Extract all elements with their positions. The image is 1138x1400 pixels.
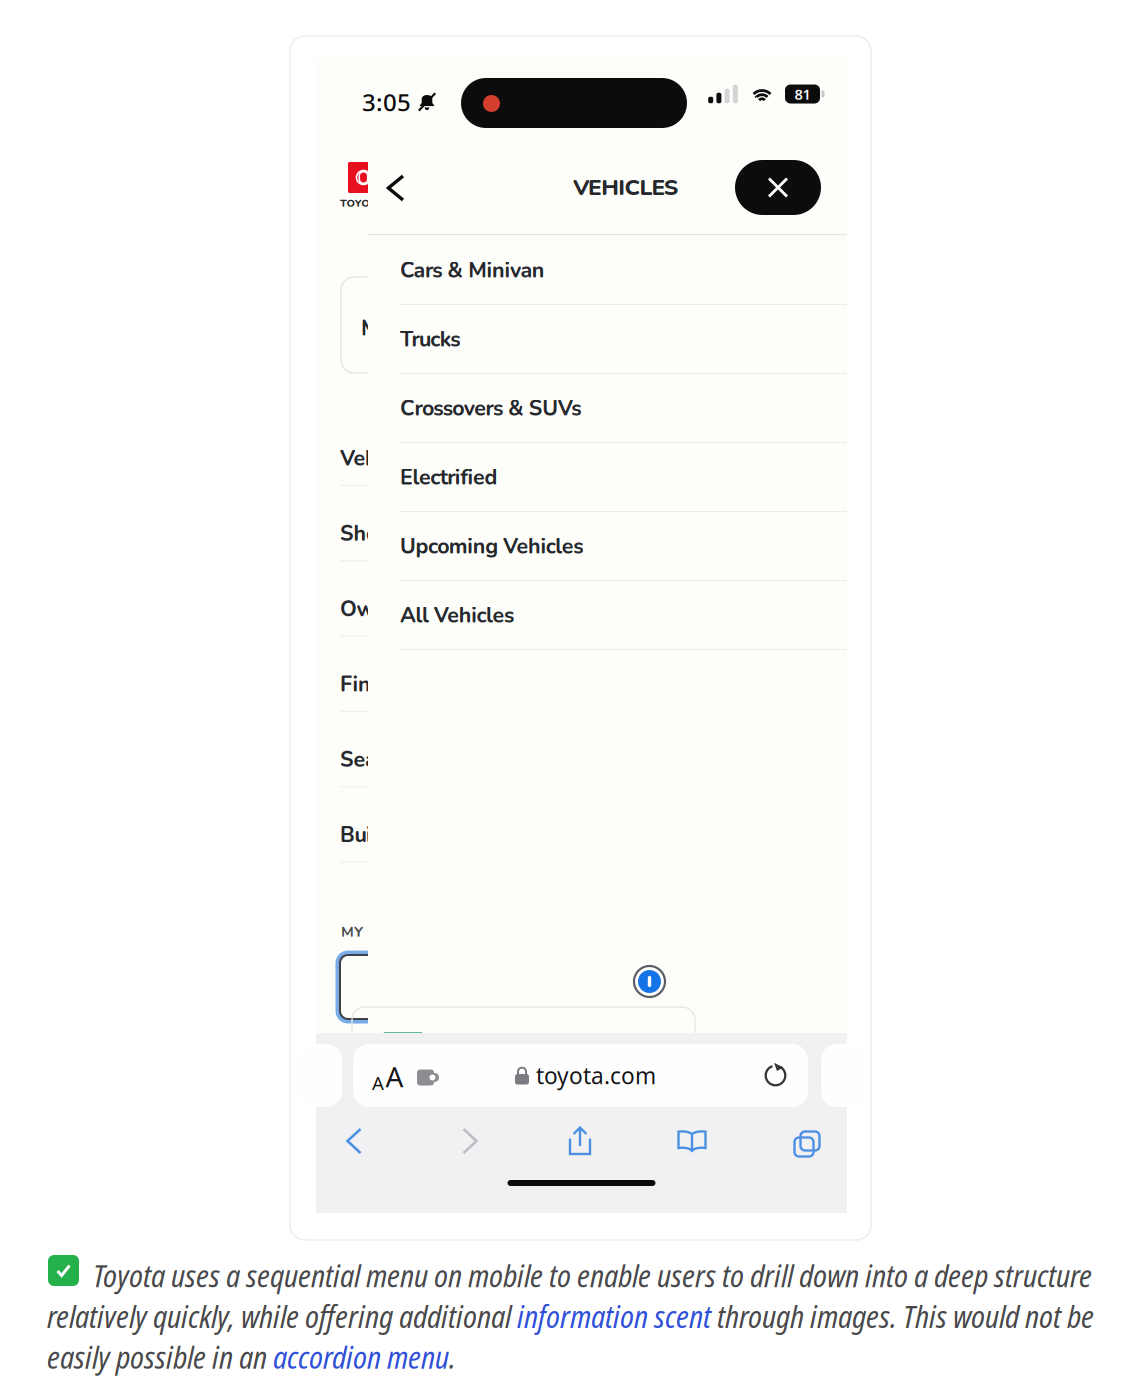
staticText: Vehicles bbox=[340, 444, 420, 473]
button[interactable]: Upcoming Vehicles bbox=[368, 512, 847, 581]
button[interactable]: A bbox=[353, 1044, 808, 1107]
staticText: toyota.com bbox=[536, 1060, 656, 1090]
button[interactable]: Close bbox=[735, 160, 821, 215]
staticText: Toyota uses a sequential menu on mobile … bbox=[47, 1255, 1094, 1377]
staticText: Crossovers & SUVs bbox=[400, 394, 581, 423]
staticText: All Vehicles bbox=[400, 601, 514, 630]
button[interactable]: All Vehicles bbox=[368, 581, 847, 650]
staticText: Electrified bbox=[400, 463, 497, 492]
button[interactable]: Bookmarks bbox=[664, 1115, 720, 1167]
staticText: MY bbox=[341, 922, 363, 942]
staticText: Financial bbox=[340, 670, 428, 699]
button[interactable]: Tabs bbox=[776, 1115, 832, 1167]
staticText: TOYOTA bbox=[340, 196, 384, 210]
staticText: Trucks bbox=[400, 325, 460, 354]
staticText: Build bbox=[340, 820, 391, 850]
button[interactable]: Cars & Minivan bbox=[368, 236, 847, 305]
staticText: A bbox=[372, 1070, 384, 1095]
staticText: 3:05 bbox=[362, 86, 411, 118]
staticText: Search bbox=[340, 745, 406, 774]
staticText: Owners bbox=[340, 595, 415, 624]
button[interactable]: Share bbox=[552, 1115, 608, 1167]
button[interactable]: Back bbox=[326, 1115, 382, 1167]
button[interactable]: Crossovers & SUVs bbox=[368, 374, 847, 443]
staticText: VEHICLES bbox=[573, 172, 679, 203]
staticText: Upcoming Vehicles bbox=[400, 532, 583, 561]
button[interactable]: Trucks bbox=[368, 305, 847, 374]
staticText: Cars & Minivan bbox=[400, 256, 545, 285]
staticText: M bbox=[361, 314, 380, 343]
button[interactable]: Electrified bbox=[368, 443, 847, 512]
staticText: Shopping bbox=[340, 519, 433, 548]
button[interactable]: Back bbox=[372, 160, 419, 216]
button[interactable]: Forward bbox=[442, 1115, 498, 1167]
staticText: 81 bbox=[794, 84, 810, 104]
staticText: A bbox=[385, 1058, 403, 1095]
